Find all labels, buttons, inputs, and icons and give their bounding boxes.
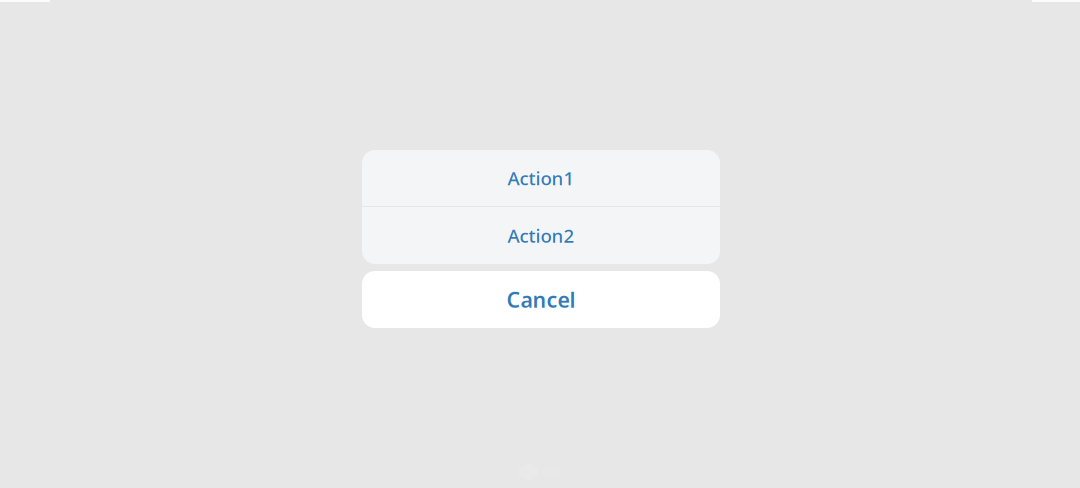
button[interactable]: Action1 bbox=[362, 150, 720, 206]
staticText: Action1 bbox=[507, 166, 574, 190]
staticText: Action2 bbox=[507, 223, 574, 248]
button[interactable]: Cancel bbox=[362, 271, 720, 328]
staticText: Cancel bbox=[506, 285, 575, 314]
button[interactable]: Action2 bbox=[362, 207, 720, 264]
